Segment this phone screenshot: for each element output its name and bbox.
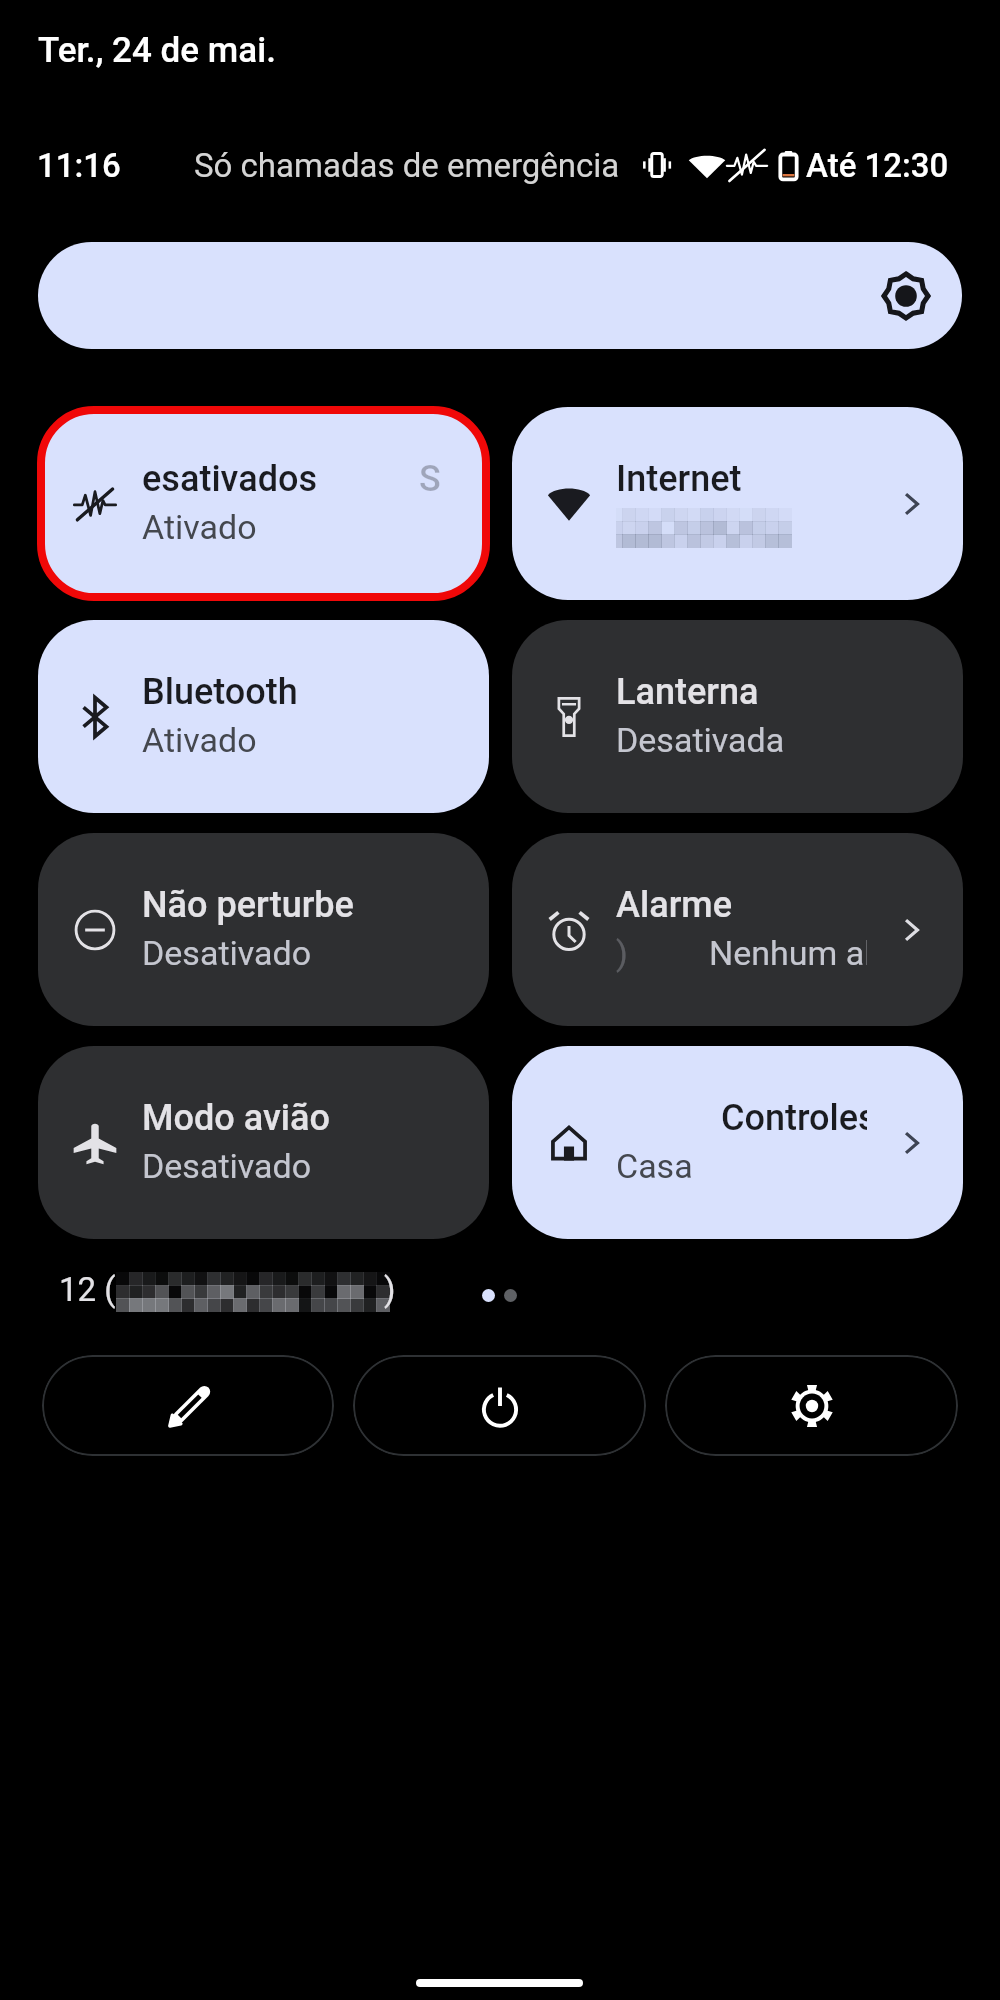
staticText: Internet: [616, 458, 742, 500]
staticText: Ter., 24 de mai.: [38, 30, 276, 71]
button[interactable]: Controles: [512, 1046, 963, 1239]
staticText: Lanterna: [616, 671, 759, 713]
button[interactable]: Modo avião: [38, 1046, 489, 1239]
staticText: Modo avião: [142, 1097, 331, 1139]
staticText: Desativado: [142, 1146, 312, 1186]
staticText: 11:16: [37, 146, 121, 185]
staticText: S: [419, 458, 441, 500]
staticText: Ativado: [142, 507, 257, 547]
staticText: Não perturbe: [142, 884, 354, 926]
staticText: Só chamadas de emergência: [194, 146, 620, 185]
button[interactable]: Desligar: [353, 1355, 646, 1456]
staticText: Até 12:30: [806, 146, 949, 185]
staticText: ): [384, 1270, 396, 1309]
staticText: Nenhum al: [709, 933, 867, 973]
button[interactable]: Configurações: [665, 1355, 958, 1456]
staticText: Alarme: [616, 884, 732, 926]
button[interactable]: Editar: [42, 1355, 334, 1456]
staticText: ): [616, 933, 628, 973]
button[interactable]: Bluetooth: [38, 620, 489, 813]
staticText: esativados: [142, 458, 318, 500]
button[interactable]: S: [38, 407, 489, 600]
button[interactable]: Lanterna: [512, 620, 963, 813]
staticText: Ativado: [142, 720, 257, 760]
staticText: Desativada: [616, 720, 785, 760]
button[interactable]: Brilho: [38, 242, 962, 349]
staticText: Desativado: [142, 933, 312, 973]
button[interactable]: Internet: [512, 407, 963, 600]
staticText: Bluetooth: [142, 671, 298, 713]
button[interactable]: Não perturbe: [38, 833, 489, 1026]
staticText: Casa: [616, 1146, 693, 1186]
staticText: Controles: [721, 1097, 867, 1139]
button[interactable]: Alarme: [512, 833, 963, 1026]
staticText: 12 (: [59, 1270, 116, 1309]
